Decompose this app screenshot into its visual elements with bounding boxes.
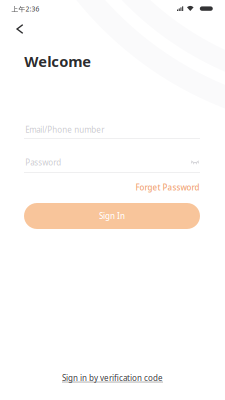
staticText: 上午2:36 — [12, 5, 40, 13]
staticText: Password — [25, 157, 61, 168]
staticText: Welcome — [24, 51, 91, 71]
button[interactable]: Sign In — [0, 0, 176, 26]
staticText: Sign In — [99, 211, 125, 221]
button[interactable]: Forget Password — [0, 0, 64, 11]
staticText: Email/Phone number — [25, 124, 104, 135]
button[interactable]: Sign in by verification code — [0, 0, 101, 11]
button[interactable]: Back — [0, 0, 14, 14]
staticText: Forget Password — [136, 182, 200, 193]
staticText: Sign in by verification code — [62, 373, 163, 383]
